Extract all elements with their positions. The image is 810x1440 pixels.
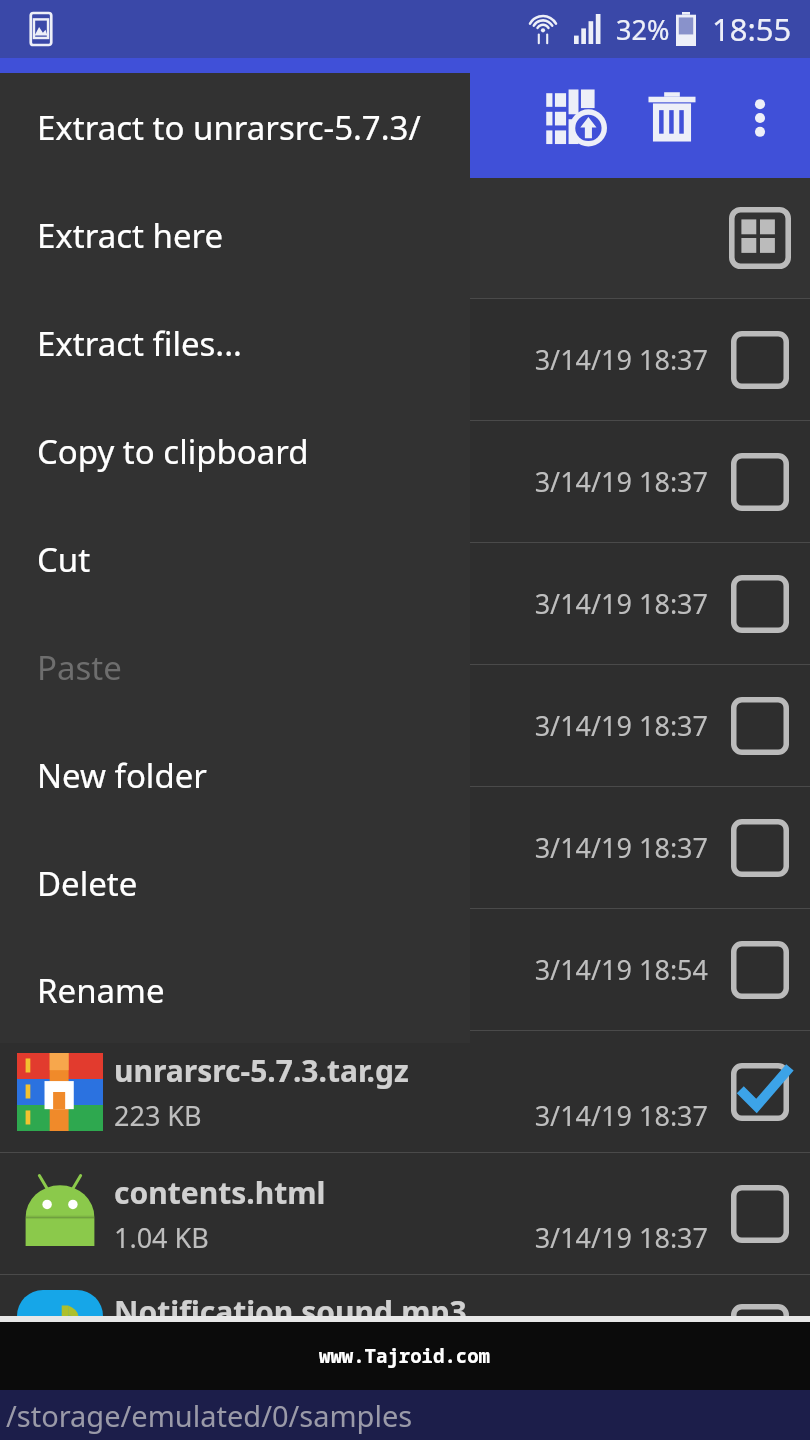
button[interactable]: Select	[722, 932, 798, 1008]
button[interactable]: 3/14/19 18:37	[0, 787, 810, 908]
staticText: 3/14/19 18:37	[534, 463, 708, 500]
staticText: Notification sound.mp3	[114, 1291, 467, 1332]
staticText: Paste	[37, 645, 122, 690]
button[interactable]: Select	[722, 1176, 798, 1252]
staticText: 2 GB / 11.7 GB	[114, 243, 296, 280]
button[interactable]: Device storage	[0, 178, 810, 298]
button[interactable]: Select	[722, 810, 798, 886]
staticText: /storage/emulated/0/samples	[6, 1396, 413, 1435]
button[interactable]: Select	[722, 1054, 798, 1130]
button[interactable]: Delete	[624, 70, 720, 166]
staticText: Extract to unrarsrc-5.7.3/	[37, 105, 421, 150]
button[interactable]: Paste	[0, 613, 470, 721]
button[interactable]: Notification sound.mp3	[0, 1275, 810, 1390]
button[interactable]: Delete	[0, 829, 470, 937]
staticText: Copy to clipboard	[37, 429, 309, 474]
button[interactable]: Storage view	[722, 200, 798, 276]
staticText: Rename	[37, 968, 165, 1013]
button[interactable]: Extract archive	[528, 70, 624, 166]
staticText: 223 KB	[114, 1097, 202, 1134]
button[interactable]: Select	[722, 566, 798, 642]
button[interactable]: 3/14/19 18:37	[0, 299, 810, 420]
staticText: www.Tajroid.com	[319, 1343, 491, 1369]
button[interactable]: Select	[722, 444, 798, 520]
button[interactable]: 3/14/19 18:37	[0, 543, 810, 664]
staticText: unrarsrc-5.7.3.tar.gz	[114, 1050, 409, 1091]
staticText: 3/14/19 18:37	[534, 707, 708, 744]
button[interactable]: contents.html	[0, 1153, 810, 1274]
button[interactable]: Copy to clipboard	[0, 397, 470, 505]
staticText: Delete	[37, 861, 138, 906]
staticText: 18:55	[712, 8, 792, 50]
button[interactable]: Select	[722, 322, 798, 398]
staticText: 3/14/19 18:37	[534, 1097, 708, 1134]
staticText: contents.html	[114, 1172, 326, 1213]
button[interactable]: Extract files...	[0, 289, 470, 397]
staticText: 1.04 KB	[114, 1219, 209, 1256]
button[interactable]: 3/14/19 18:54	[0, 909, 810, 1030]
staticText: 32%	[616, 11, 670, 48]
button[interactable]: New folder	[0, 721, 470, 829]
staticText: 3/14/19 18:37	[534, 829, 708, 866]
staticText: Extract here	[37, 213, 224, 258]
button[interactable]: unrarsrc-5.7.3.tar.gz	[0, 1031, 810, 1152]
button[interactable]: Rename	[0, 937, 470, 1043]
button[interactable]: Select	[722, 688, 798, 764]
button[interactable]: Extract here	[0, 181, 470, 289]
staticText: Cut	[37, 537, 91, 582]
staticText: 3/14/19 18:37	[534, 1219, 708, 1256]
button[interactable]: 3/14/19 18:37	[0, 665, 810, 786]
button[interactable]: More options	[720, 78, 800, 158]
staticText: Extract files...	[37, 321, 242, 366]
button[interactable]: Select	[722, 1295, 798, 1371]
staticText: 3/14/19 18:37	[534, 341, 708, 378]
staticText: 3/14/19 18:37	[534, 585, 708, 622]
button[interactable]: Extract to unrarsrc-5.7.3/	[0, 73, 470, 181]
staticText: New folder	[37, 753, 207, 798]
button[interactable]: 3/14/19 18:37	[0, 421, 810, 542]
staticText: 3/14/19 18:54	[534, 951, 708, 988]
button[interactable]: /storage/emulated/0/samples	[0, 1390, 810, 1440]
button[interactable]: Cut	[0, 505, 470, 613]
staticText: Device storage	[114, 196, 322, 237]
